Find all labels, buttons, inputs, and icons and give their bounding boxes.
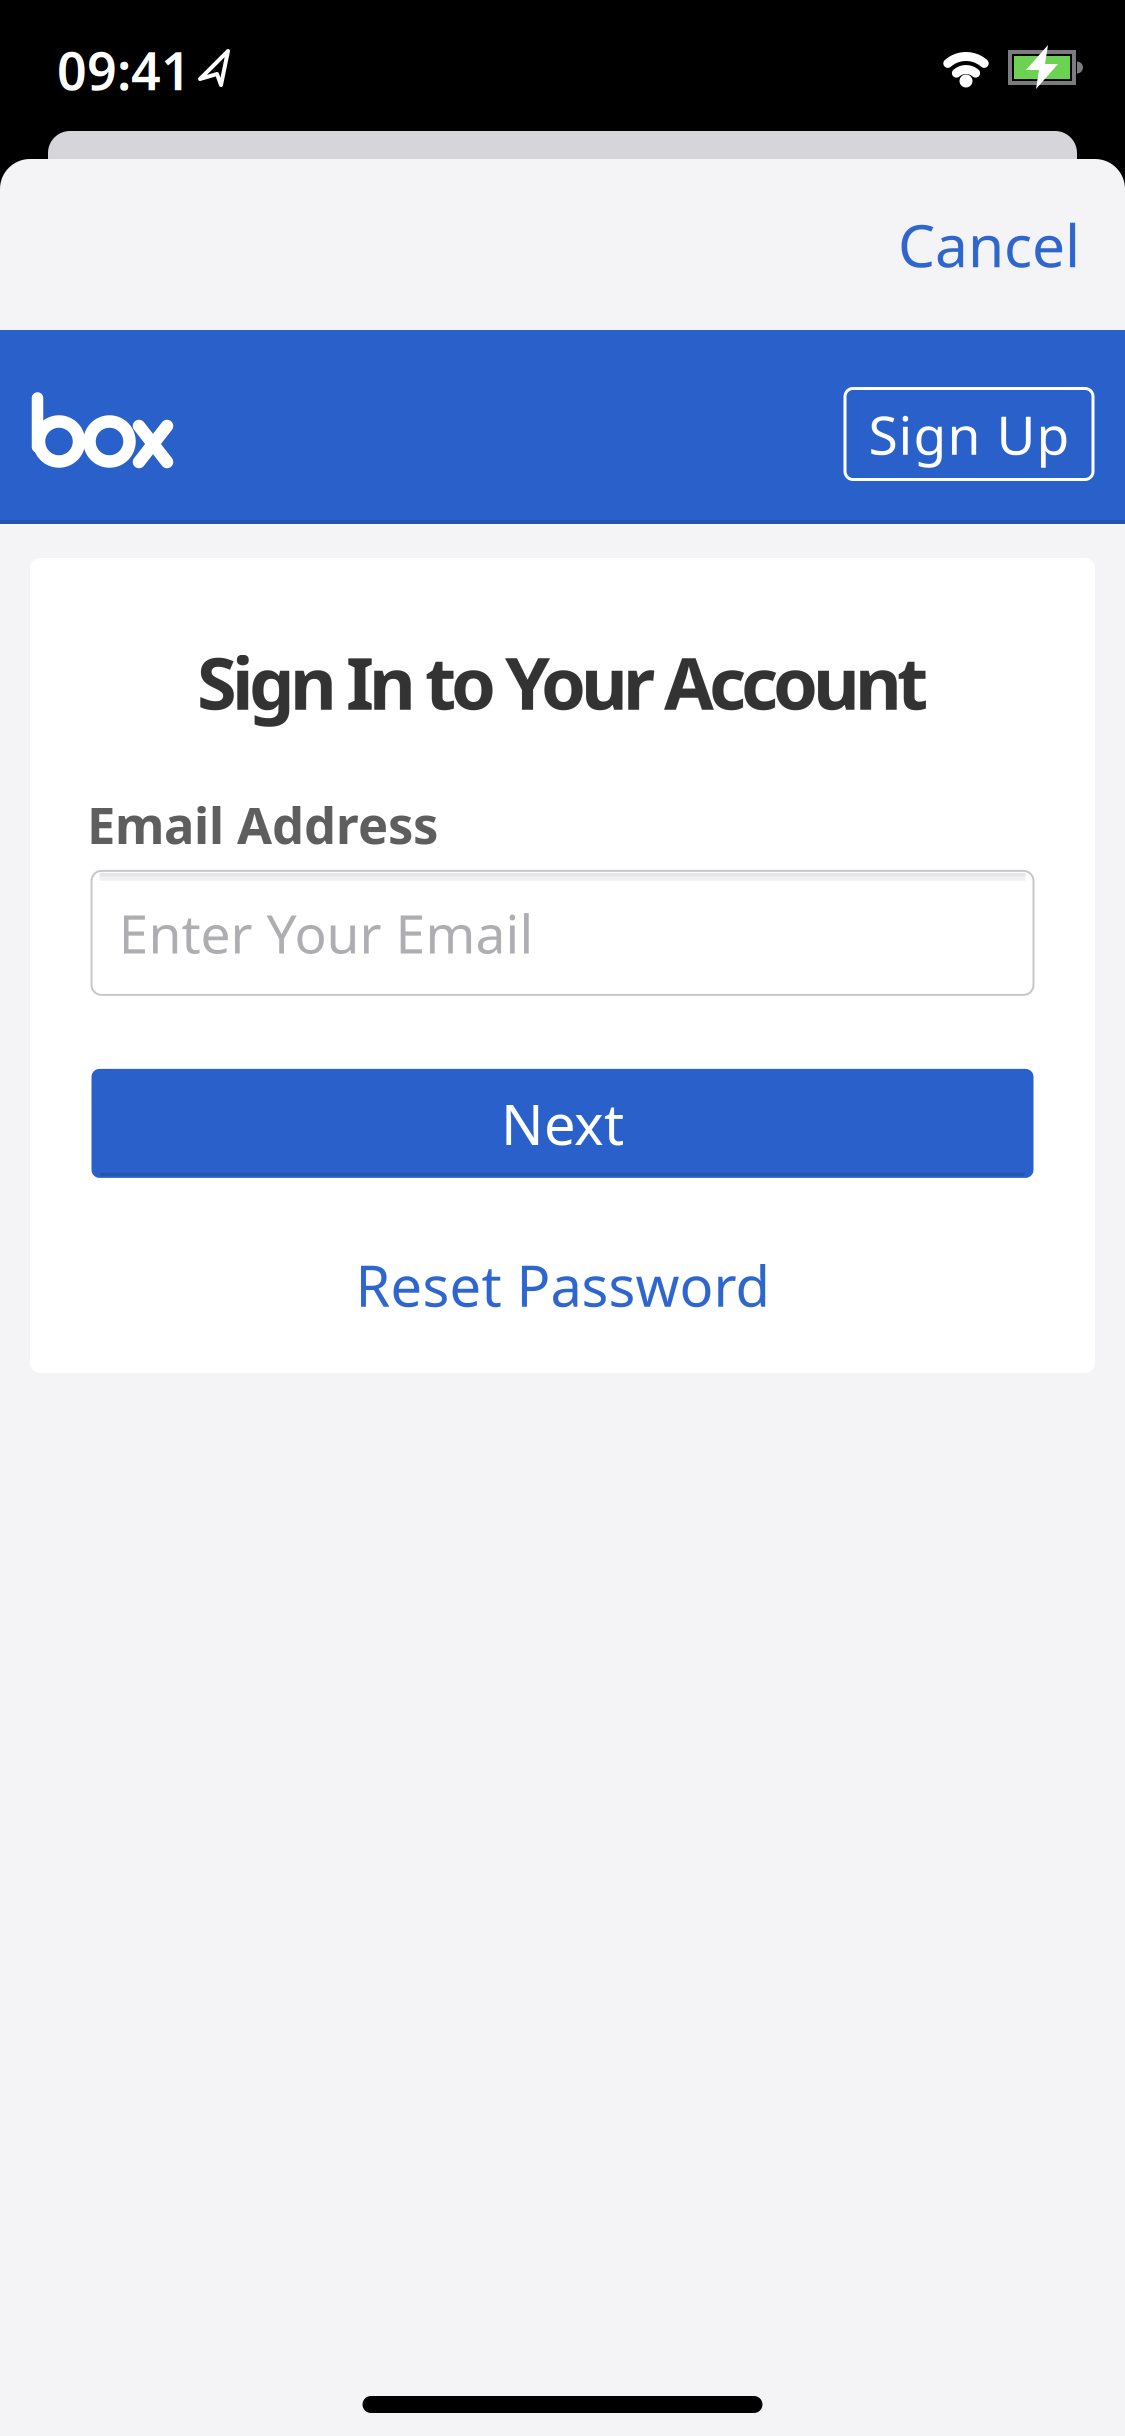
- staticText: Reset Password: [355, 1248, 769, 1322]
- button[interactable]: Enter Your Email: [91, 871, 1033, 995]
- staticText: Sign Up: [868, 399, 1069, 469]
- button[interactable]: Cancel: [898, 205, 1080, 283]
- button[interactable]: Reset Password: [355, 1248, 769, 1322]
- button[interactable]: Sign Up: [845, 381, 1093, 472]
- staticText: 09:41: [57, 35, 191, 105]
- staticText: Enter Your Email: [118, 897, 533, 968]
- staticText: Sign In to Your Account: [197, 634, 928, 730]
- button[interactable]: Next: [91, 1069, 1033, 1178]
- staticText: Email Address: [87, 791, 438, 858]
- staticText: Cancel: [898, 205, 1080, 283]
- staticText: Next: [501, 1086, 624, 1161]
